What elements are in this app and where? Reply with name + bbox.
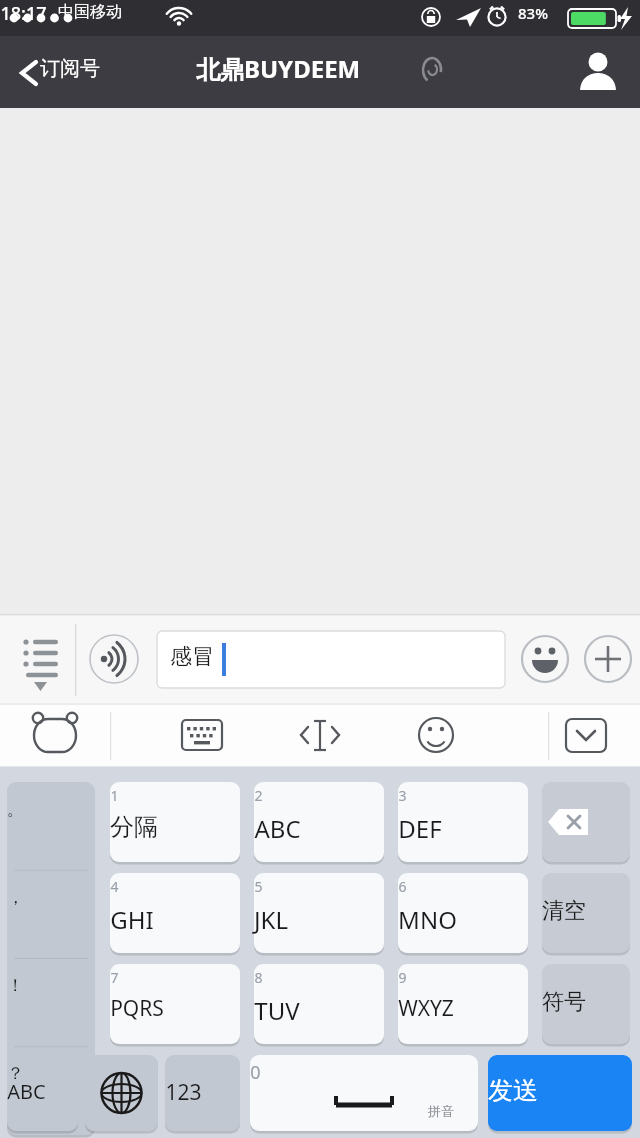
- staticText: ABC: [254, 812, 301, 845]
- staticText: 6: [398, 877, 407, 896]
- staticText: 中国移动: [58, 2, 122, 22]
- button[interactable]: PQRS: [110, 964, 240, 1044]
- staticText: 7: [110, 968, 119, 987]
- staticText: DEF: [398, 812, 442, 845]
- button[interactable]: Backspace: [542, 782, 630, 862]
- staticText: 1: [110, 786, 119, 805]
- button[interactable]: ABC: [254, 782, 384, 862]
- button[interactable]: Keyboard settings: [178, 712, 228, 760]
- staticText: 8: [254, 968, 263, 987]
- staticText: 清空: [542, 897, 586, 925]
- button[interactable]: 符号: [542, 964, 630, 1044]
- button[interactable]: 发送: [488, 1055, 632, 1131]
- button[interactable]: ABC: [7, 1055, 78, 1131]
- button[interactable]: Back to 订阅号: [8, 44, 128, 102]
- staticText: 感冒: [170, 643, 214, 671]
- button[interactable]: Switch language: [85, 1055, 158, 1131]
- button[interactable]: GHI: [110, 873, 240, 953]
- button[interactable]: WXYZ: [398, 964, 528, 1044]
- button[interactable]: Move cursor: [296, 712, 346, 760]
- button[interactable]: 清空: [542, 873, 630, 953]
- staticText: 北鼎BUYDEEM: [196, 52, 361, 85]
- button[interactable]: Emoticons: [412, 712, 462, 760]
- staticText: 拼音: [428, 1103, 454, 1119]
- staticText: ，: [7, 887, 24, 908]
- button[interactable]: TUV: [254, 964, 384, 1044]
- button[interactable]: Baidu input: [28, 710, 84, 762]
- button[interactable]: Punctuation: [7, 782, 95, 1135]
- staticText: 分隔: [110, 812, 158, 842]
- staticText: 发送: [488, 1075, 538, 1106]
- staticText: MNO: [398, 903, 457, 936]
- staticText: ！: [7, 975, 24, 996]
- staticText: 83%: [518, 3, 548, 23]
- button[interactable]: 分隔: [110, 782, 240, 862]
- staticText: 订阅号: [40, 56, 100, 81]
- staticText: ABC: [7, 1078, 46, 1105]
- staticText: PQRS: [110, 994, 164, 1023]
- button[interactable]: Emoji: [520, 634, 570, 684]
- button[interactable]: Voice input: [88, 632, 142, 686]
- button[interactable]: Message input: [157, 631, 505, 688]
- button[interactable]: Profile: [568, 44, 632, 102]
- staticText: 18:17: [0, 1, 47, 26]
- staticText: 5: [254, 877, 263, 896]
- staticText: 符号: [542, 988, 586, 1016]
- staticText: TUV: [254, 994, 300, 1027]
- staticText: 3: [398, 786, 407, 805]
- staticText: 9: [398, 968, 407, 987]
- button[interactable]: Space: [250, 1055, 478, 1131]
- staticText: ？: [7, 1063, 24, 1084]
- staticText: GHI: [110, 903, 154, 936]
- button[interactable]: MNO: [398, 873, 528, 953]
- staticText: WXYZ: [398, 994, 454, 1023]
- staticText: 0: [250, 1060, 261, 1085]
- button[interactable]: DEF: [398, 782, 528, 862]
- button[interactable]: Hide keyboard: [562, 714, 612, 758]
- button[interactable]: More: [584, 634, 634, 684]
- button[interactable]: JKL: [254, 873, 384, 953]
- staticText: 。: [7, 799, 24, 820]
- staticText: JKL: [254, 903, 288, 936]
- staticText: 123: [165, 1078, 202, 1107]
- staticText: 2: [254, 786, 263, 805]
- staticText: 4: [110, 877, 119, 896]
- button[interactable]: 123: [165, 1055, 240, 1131]
- button[interactable]: Menu: [8, 624, 74, 696]
